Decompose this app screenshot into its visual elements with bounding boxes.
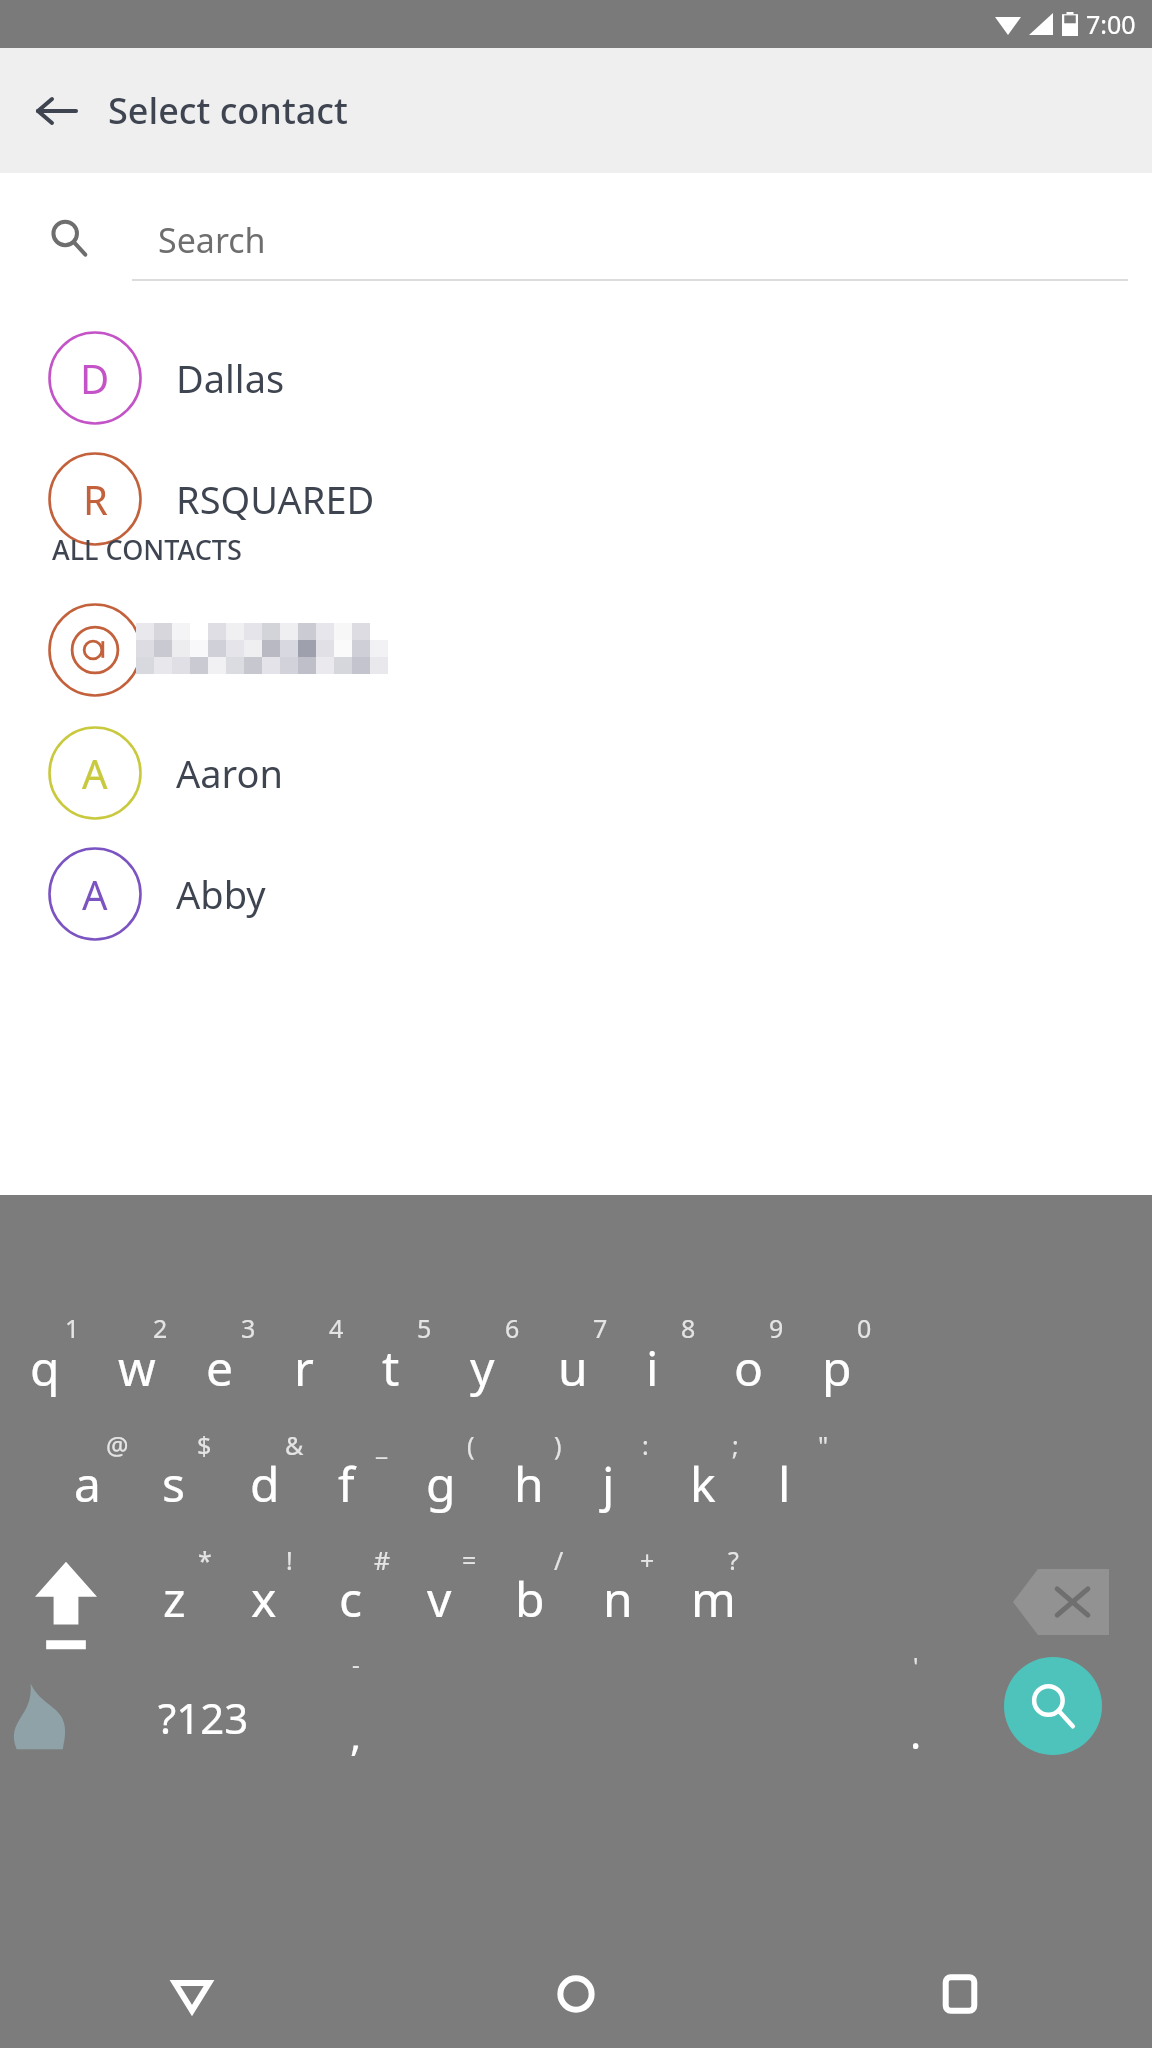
staticText: A — [82, 867, 108, 921]
button[interactable] — [661, 1535, 749, 1665]
button[interactable]: Back — [0, 1940, 384, 2048]
staticText: . — [910, 1704, 922, 1761]
staticText: y — [470, 1335, 495, 1400]
button[interactable]: Recent apps — [768, 1940, 1152, 2048]
button[interactable]: Back — [22, 77, 90, 145]
staticText: Abby — [176, 868, 266, 920]
button[interactable] — [616, 1303, 704, 1433]
button[interactable] — [133, 1535, 221, 1665]
staticText: 6 — [505, 1311, 520, 1345]
staticText: u — [558, 1335, 588, 1400]
staticText: s — [162, 1451, 185, 1516]
button[interactable]: ' — [856, 1645, 976, 1765]
button[interactable] — [660, 1420, 748, 1550]
staticText: n — [603, 1566, 633, 1631]
staticText: / — [554, 1543, 564, 1577]
button[interactable] — [573, 1535, 661, 1665]
button[interactable] — [308, 1420, 396, 1550]
staticText: r — [294, 1335, 314, 1400]
button[interactable] — [572, 1420, 660, 1550]
staticText: ' — [913, 1649, 919, 1682]
staticText: c — [339, 1566, 363, 1631]
staticText: & — [285, 1428, 304, 1462]
button[interactable]: Backspace — [1002, 1555, 1120, 1649]
button[interactable] — [176, 1303, 264, 1433]
staticText: , — [350, 1706, 362, 1763]
staticText: 2 — [153, 1311, 168, 1345]
staticText: ) — [554, 1428, 562, 1462]
button[interactable] — [0, 1303, 88, 1433]
staticText: A — [82, 746, 108, 800]
button[interactable] — [220, 1420, 308, 1550]
staticText: ? — [728, 1543, 739, 1577]
button[interactable] — [397, 1535, 485, 1665]
button[interactable] — [309, 1535, 397, 1665]
button[interactable]: - — [296, 1645, 416, 1765]
staticText: e — [206, 1335, 234, 1400]
button[interactable] — [792, 1303, 880, 1433]
button[interactable]: Search — [0, 195, 1152, 291]
staticText: 0 — [857, 1311, 872, 1345]
staticText: j — [602, 1451, 615, 1516]
staticText: b — [515, 1566, 545, 1631]
staticText: g — [426, 1451, 456, 1516]
staticText: a — [74, 1451, 101, 1516]
staticText: " — [818, 1428, 829, 1462]
button[interactable]: Home — [384, 1940, 768, 2048]
staticText: Search — [158, 217, 266, 263]
staticText: + — [640, 1543, 655, 1577]
staticText: t — [382, 1335, 400, 1400]
button[interactable] — [352, 1303, 440, 1433]
button[interactable]: A — [0, 713, 1152, 833]
staticText: x — [251, 1566, 277, 1631]
staticText: * — [198, 1543, 212, 1577]
staticText: q — [30, 1335, 60, 1400]
button[interactable] — [485, 1535, 573, 1665]
staticText: ; — [732, 1428, 739, 1462]
button[interactable] — [396, 1420, 484, 1550]
staticText: p — [822, 1335, 852, 1400]
staticText: 7 — [593, 1311, 608, 1345]
button[interactable] — [704, 1303, 792, 1433]
staticText: f — [338, 1451, 355, 1516]
staticText: $ — [197, 1428, 212, 1462]
button[interactable] — [440, 1303, 528, 1433]
staticText: ?123 — [158, 1689, 249, 1746]
staticText: 4 — [329, 1311, 344, 1345]
staticText: = — [462, 1543, 477, 1577]
staticText: 8 — [681, 1311, 696, 1345]
button[interactable]: R — [0, 439, 1152, 559]
button[interactable]: D — [0, 318, 1152, 438]
button[interactable] — [264, 1303, 352, 1433]
button[interactable]: Search — [1004, 1657, 1102, 1755]
button[interactable]: ?123 — [118, 1673, 288, 1761]
staticText: # — [374, 1543, 391, 1577]
staticText: ALL CONTACTS — [52, 531, 242, 568]
staticText: ( — [467, 1428, 475, 1462]
staticText: k — [690, 1451, 716, 1516]
staticText: w — [118, 1335, 156, 1400]
button[interactable] — [132, 1420, 220, 1550]
button[interactable]: Shift — [20, 1547, 112, 1665]
button[interactable] — [221, 1535, 309, 1665]
button[interactable]: Handwriting input — [0, 1673, 84, 1759]
staticText: h — [514, 1451, 544, 1516]
button[interactable]: A — [0, 834, 1152, 954]
staticText: R — [83, 472, 108, 526]
button[interactable] — [484, 1420, 572, 1550]
staticText: 1 — [65, 1311, 80, 1345]
button[interactable] — [88, 1303, 176, 1433]
button[interactable] — [44, 1420, 132, 1550]
staticText: m — [691, 1566, 736, 1631]
button[interactable] — [528, 1303, 616, 1433]
staticText: i — [646, 1335, 659, 1400]
staticText: o — [734, 1335, 764, 1400]
staticText: 7:00 — [1086, 7, 1136, 41]
staticText: D — [80, 351, 110, 405]
staticText: Select contact — [108, 86, 348, 135]
staticText: RSQUARED — [176, 473, 375, 525]
staticText: : — [642, 1428, 649, 1462]
staticText: v — [427, 1566, 452, 1631]
button[interactable] — [748, 1420, 836, 1550]
button[interactable] — [0, 590, 1152, 710]
